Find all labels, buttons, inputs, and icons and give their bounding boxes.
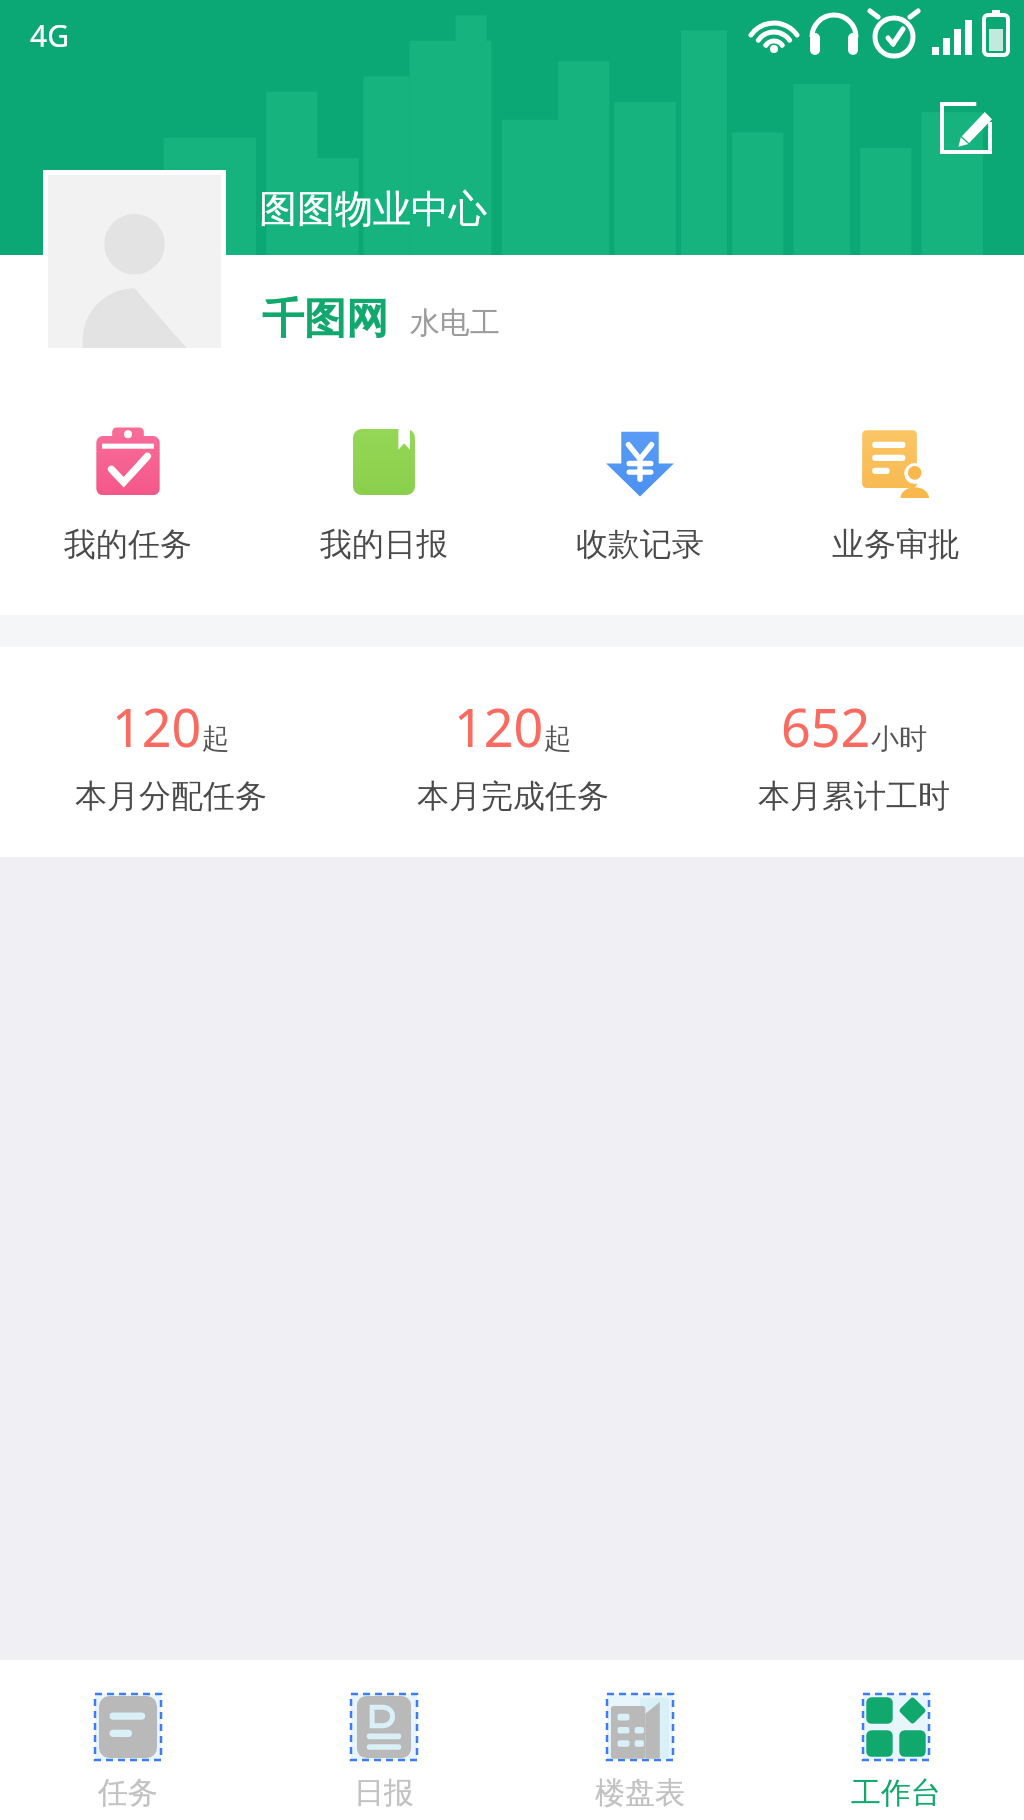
staticText: 我的日报 xyxy=(320,524,448,564)
staticText: 起 xyxy=(544,721,572,756)
staticText: 本月分配任务 xyxy=(75,776,267,816)
button[interactable]: 工作台 xyxy=(768,1660,1024,1820)
staticText: 业务审批 xyxy=(832,524,960,564)
staticText: 起 xyxy=(202,721,230,756)
staticText: 我的任务 xyxy=(64,524,192,564)
staticText: 图图物业中心 xyxy=(259,185,487,233)
button[interactable]: 日报 xyxy=(256,1660,512,1820)
staticText: 收款记录 xyxy=(576,524,704,564)
button[interactable]: 我的日报 xyxy=(256,420,512,570)
staticText: 千图网 xyxy=(262,293,388,346)
staticText: 任务 xyxy=(98,1774,158,1812)
button[interactable]: 任务 xyxy=(0,1660,256,1820)
staticText: 120 xyxy=(112,691,202,762)
button[interactable]: 120 xyxy=(342,691,683,816)
staticText: 日报 xyxy=(354,1774,414,1812)
button[interactable]: 收款记录 xyxy=(512,420,768,570)
staticText: 4G xyxy=(30,15,69,56)
button[interactable]: 业务审批 xyxy=(768,420,1024,570)
staticText: 工作台 xyxy=(851,1774,941,1812)
button[interactable]: 我的任务 xyxy=(0,420,256,570)
staticText: 652 xyxy=(781,691,871,762)
button[interactable]: 楼盘表 xyxy=(512,1660,768,1820)
button[interactable]: Edit profile xyxy=(928,90,1004,166)
staticText: 120 xyxy=(454,691,544,762)
staticText: 小时 xyxy=(871,721,927,756)
button[interactable]: 652 xyxy=(683,691,1024,816)
staticText: 本月累计工时 xyxy=(758,776,950,816)
staticText: 楼盘表 xyxy=(595,1774,685,1812)
button[interactable]: Profile avatar xyxy=(48,175,221,348)
button[interactable]: 120 xyxy=(0,691,342,816)
staticText: 本月完成任务 xyxy=(417,776,609,816)
staticText: 水电工 xyxy=(410,304,500,342)
